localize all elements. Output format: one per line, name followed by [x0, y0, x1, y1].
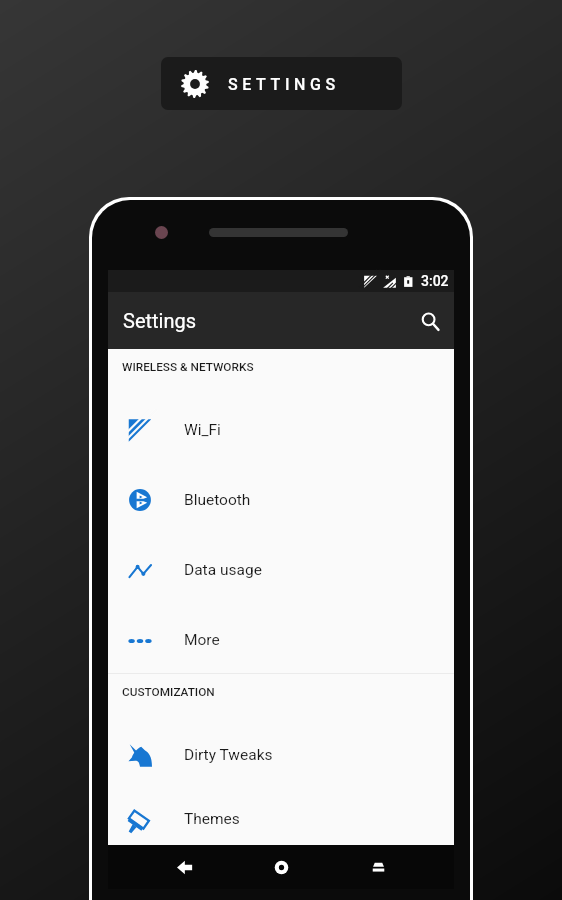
button[interactable]: Home	[259, 845, 303, 889]
button[interactable]: SETTINGS	[161, 57, 402, 110]
button[interactable]: More	[108, 603, 454, 673]
staticText: CUSTOMIZATION	[122, 685, 215, 699]
staticText: 3:02	[421, 273, 449, 289]
button[interactable]: Recents	[356, 845, 400, 889]
staticText: Bluetooth	[184, 491, 251, 509]
staticText: Wi_Fi	[184, 421, 221, 439]
button[interactable]: Bluetooth	[108, 463, 454, 533]
staticText: More	[184, 631, 220, 649]
button[interactable]: Wi_Fi	[108, 393, 454, 463]
button[interactable]: Search	[406, 297, 454, 345]
staticText: WIRELESS & NETWORKS	[122, 360, 254, 374]
button[interactable]: Back	[162, 845, 206, 889]
button[interactable]: Themes	[108, 788, 454, 845]
button[interactable]: Dirty Tweaks	[108, 718, 454, 788]
staticText: Themes	[184, 810, 240, 828]
staticText: Settings	[123, 309, 197, 332]
staticText: Dirty Tweaks	[184, 746, 273, 764]
staticText: SETTINGS	[228, 75, 340, 94]
button[interactable]: Data usage	[108, 533, 454, 603]
staticText: Data usage	[184, 561, 262, 579]
